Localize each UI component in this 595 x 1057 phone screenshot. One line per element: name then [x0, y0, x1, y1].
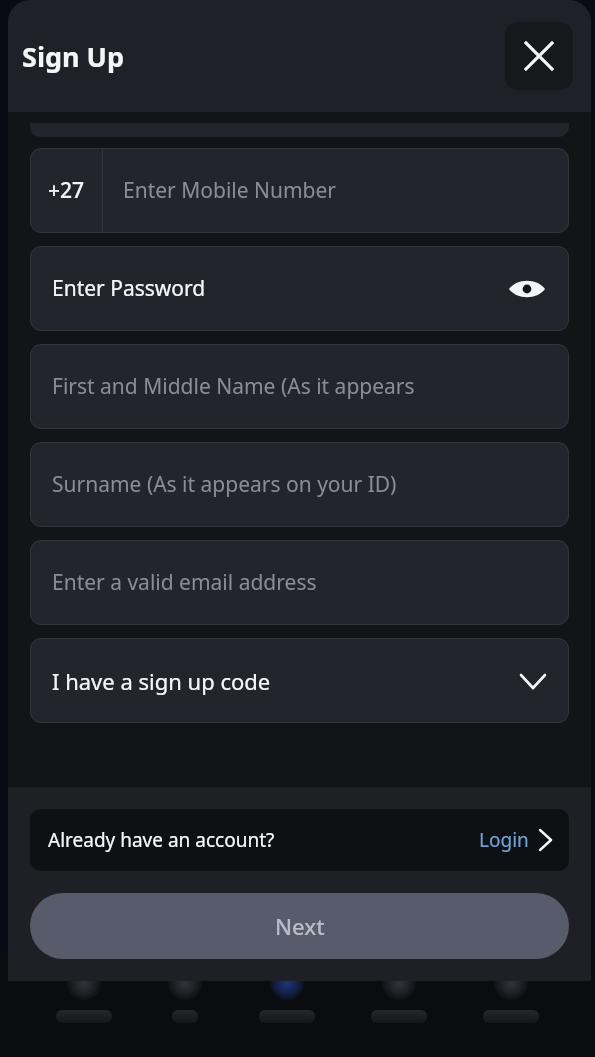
button[interactable]: Enter a valid email address [30, 540, 569, 625]
staticText: Surname (As it appears on your ID) [52, 470, 397, 499]
button[interactable]: Show password [507, 269, 547, 309]
button[interactable]: I have a sign up code [30, 638, 569, 723]
button[interactable]: Already have an account? [30, 809, 569, 871]
staticText: +27 [48, 176, 85, 205]
button[interactable]: Surname (As it appears on your ID) [30, 442, 569, 527]
staticText: I have a sign up code [52, 666, 271, 696]
staticText: Next [275, 911, 325, 941]
button[interactable]: Close [505, 22, 573, 90]
staticText: First and Middle Name (As it appears [52, 372, 415, 401]
staticText: Sign Up [22, 38, 125, 75]
staticText: Enter Mobile Number [123, 176, 337, 205]
staticText: Already have an account? [48, 827, 275, 853]
button[interactable]: +27 [30, 148, 569, 233]
staticText: Enter Password [52, 274, 206, 303]
button[interactable]: Next [30, 893, 569, 959]
staticText: Enter a valid email address [52, 568, 317, 597]
button[interactable]: Enter Password [30, 246, 569, 331]
staticText: Login [479, 827, 529, 853]
button[interactable]: First and Middle Name (As it appears [30, 344, 569, 429]
